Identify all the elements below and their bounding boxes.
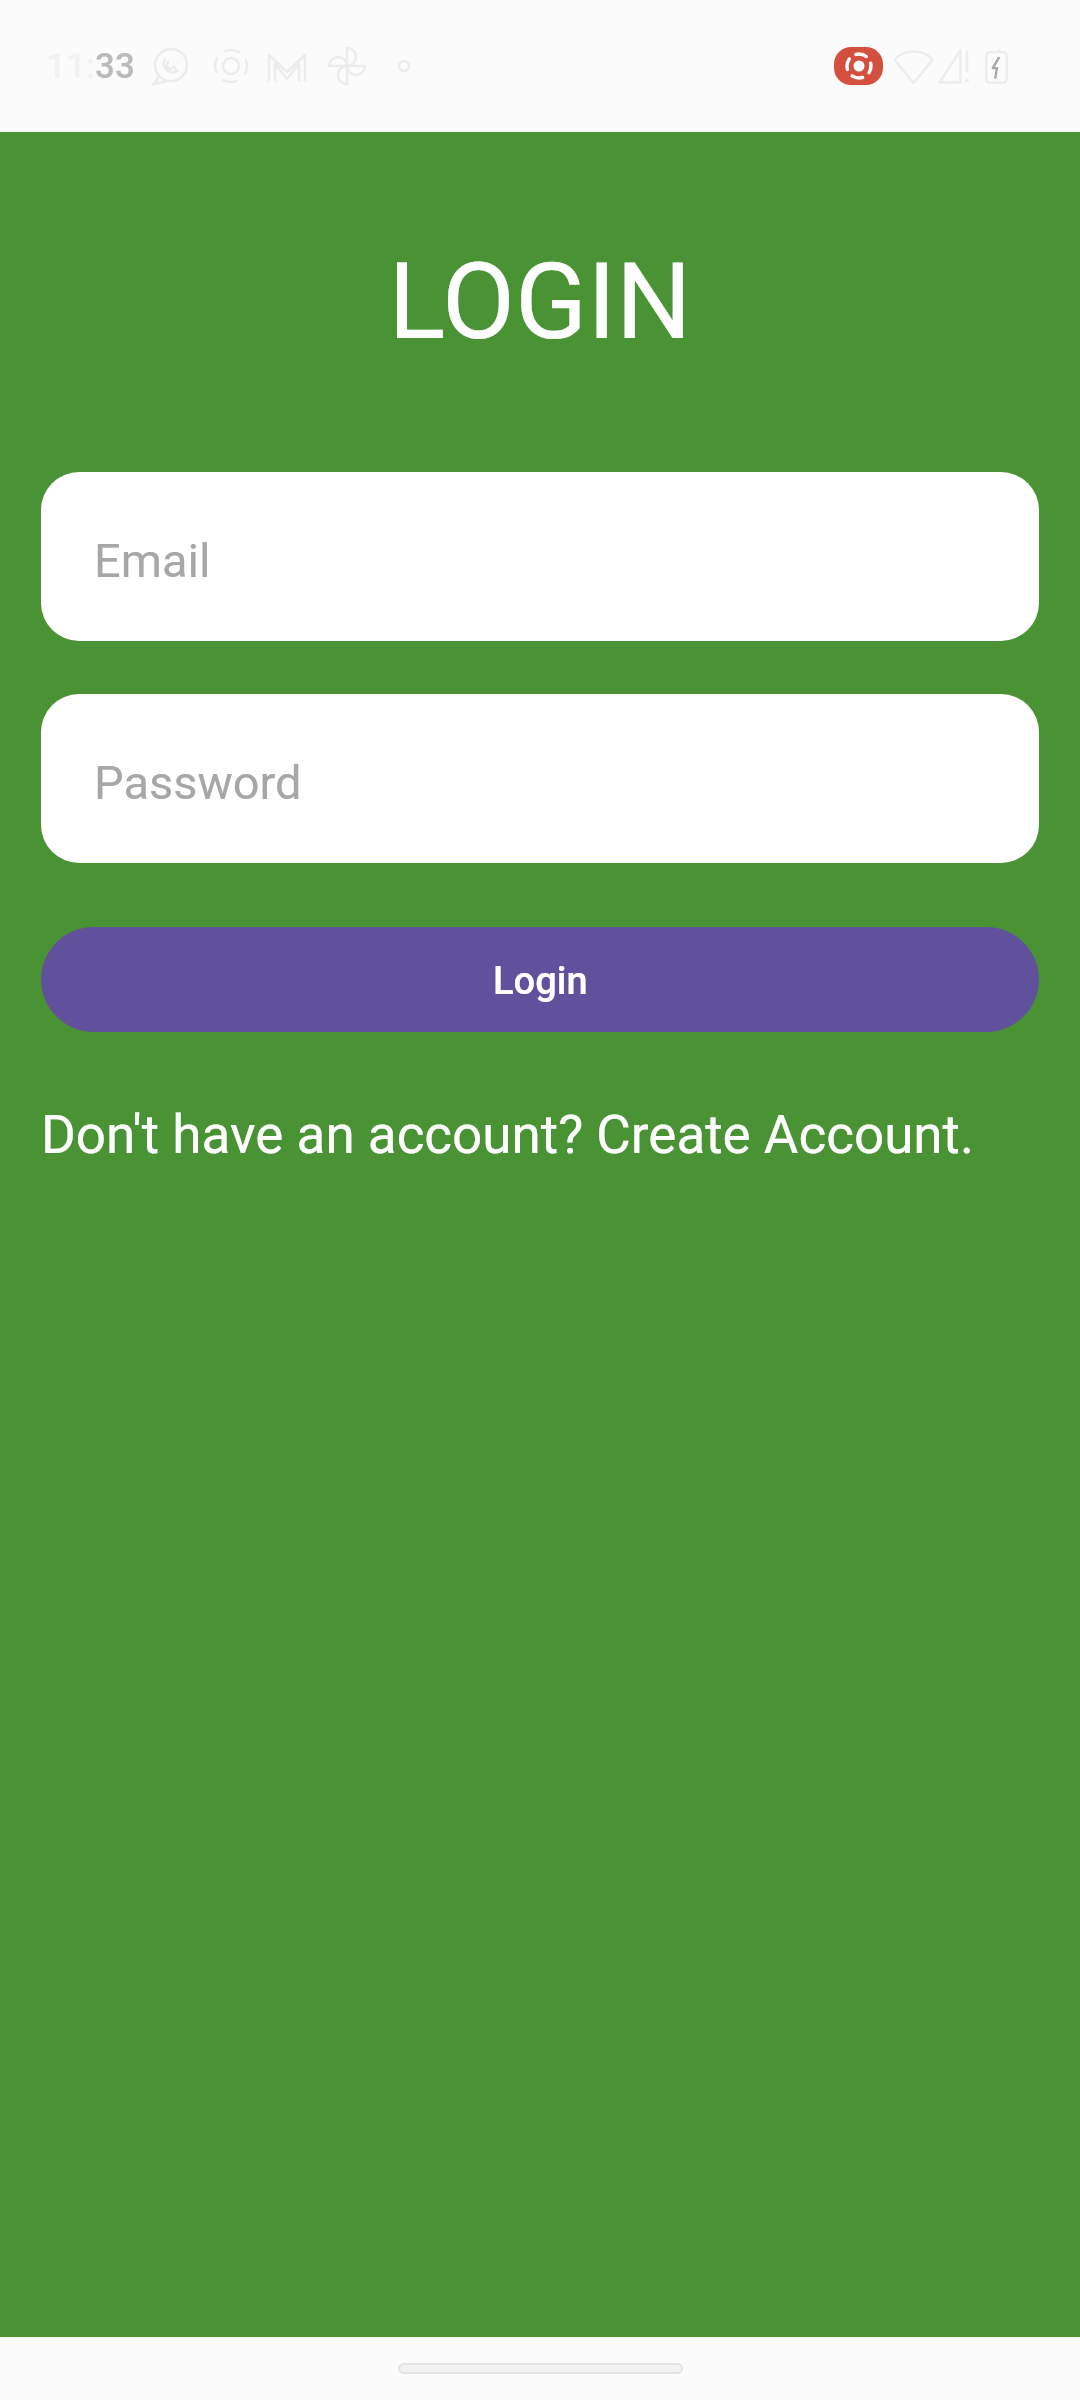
staticText: Login [493,959,588,1004]
other: Battery charging [985,48,1008,84]
button[interactable]: Login [41,927,1039,1032]
staticText: LOGIN [0,240,1080,364]
staticText: Email [94,533,211,588]
button[interactable]: Don't have an account? Create Account. [41,1104,974,1166]
other: Notifications [0,0,1080,132]
other: Screen recording [834,47,883,85]
button[interactable]: Home [398,2363,683,2374]
button[interactable]: Email [41,472,1039,641]
button[interactable]: Password [41,694,1039,863]
other: Wi-Fi [893,48,934,84]
other: Mobile signal [938,48,971,84]
staticText: Password [94,755,302,810]
staticText: 11:33 [46,46,135,87]
